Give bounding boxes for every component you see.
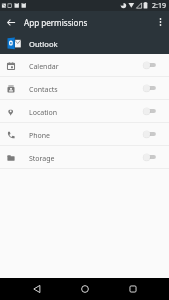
button[interactable]: Calendar permission (137, 57, 161, 73)
staticText: Phone (29, 131, 51, 141)
staticText: Outlook (29, 39, 58, 49)
button[interactable]: Recent apps (118, 278, 147, 300)
staticText: Contacts (29, 85, 58, 95)
button[interactable]: Phone permission (137, 126, 161, 142)
staticText: Storage (29, 154, 55, 164)
button[interactable]: Contacts (0, 77, 169, 99)
staticText: App permissions (24, 17, 88, 28)
staticText: Location (29, 108, 58, 118)
button[interactable]: Contacts permission (137, 80, 161, 96)
button[interactable]: Location permission (137, 103, 161, 119)
button[interactable]: Calendar (0, 54, 169, 76)
button[interactable]: Storage permission (137, 149, 161, 165)
staticText: 2:19 (152, 1, 166, 11)
button[interactable]: Phone (0, 123, 169, 145)
button[interactable]: Storage (0, 146, 169, 168)
button[interactable]: Home (70, 278, 99, 300)
button[interactable]: Location (0, 100, 169, 122)
staticText: Calendar (29, 62, 59, 72)
button[interactable]: Outlook (0, 32, 169, 54)
button[interactable]: Navigate up (0, 12, 20, 32)
button[interactable]: More options (149, 12, 169, 32)
button[interactable]: Back (22, 278, 51, 300)
